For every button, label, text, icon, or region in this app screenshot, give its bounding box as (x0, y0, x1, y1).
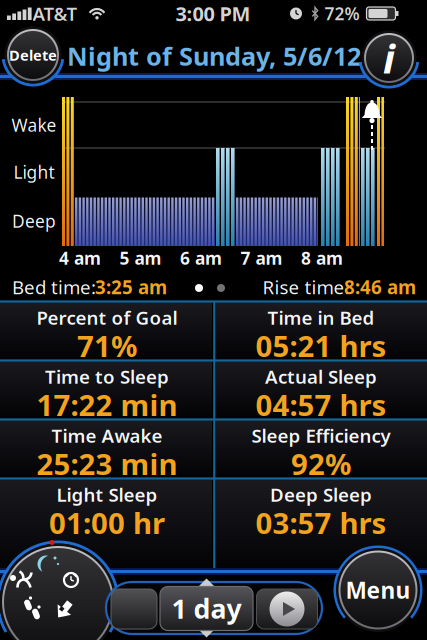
button[interactable]: Next day (256, 589, 317, 629)
button[interactable]: Menu (336, 548, 419, 631)
staticText: Wake (11, 113, 56, 136)
staticText: Percent of Goal (36, 305, 177, 330)
staticText: Light Sleep (56, 482, 157, 507)
staticText: 17:22 min (36, 385, 177, 424)
staticText: Deep (12, 209, 56, 232)
staticText: 72% (324, 2, 359, 25)
staticText: 05:21 hrs (255, 326, 386, 365)
staticText: 92% (291, 444, 351, 483)
staticText: 8:46 am (344, 275, 416, 299)
staticText: 3:00 PM (175, 0, 250, 27)
button[interactable]: Info (363, 32, 415, 84)
staticText: Delete (9, 45, 57, 65)
staticText: 4 am (59, 246, 101, 269)
staticText: 1 day (171, 591, 241, 626)
staticText: 3:25 am (95, 275, 167, 299)
staticText: Time in Bed (267, 305, 374, 330)
staticText: 6 am (180, 246, 222, 269)
staticText: AT&T (32, 1, 77, 26)
staticText: 8 am (301, 246, 343, 269)
staticText: 03:57 hrs (255, 503, 386, 542)
staticText: Sleep Efficiency (251, 423, 390, 448)
button[interactable]: Activity mode dial (0, 544, 116, 640)
staticText: Menu (345, 575, 410, 605)
staticText: Time Awake (51, 423, 162, 448)
staticText: Time to Sleep (45, 364, 169, 389)
staticText: 7 am (240, 246, 282, 269)
staticText: Light (13, 160, 54, 183)
staticText: 25:23 min (36, 444, 177, 483)
staticText: Night of Sunday, 5/6/12 (67, 39, 361, 73)
staticText: 5 am (119, 246, 161, 269)
button[interactable]: Previous day (111, 589, 157, 629)
staticText: i (383, 31, 395, 84)
staticText: Rise time: (262, 275, 349, 299)
staticText: 04:57 hrs (255, 385, 386, 424)
button[interactable]: 1 day (160, 586, 253, 630)
button[interactable]: Delete (6, 28, 60, 82)
staticText: 71% (77, 326, 137, 365)
staticText: Bed time: (12, 275, 96, 299)
staticText: Actual Sleep (265, 364, 377, 389)
staticText: Deep Sleep (270, 482, 372, 507)
staticText: 01:00 hr (49, 503, 165, 542)
